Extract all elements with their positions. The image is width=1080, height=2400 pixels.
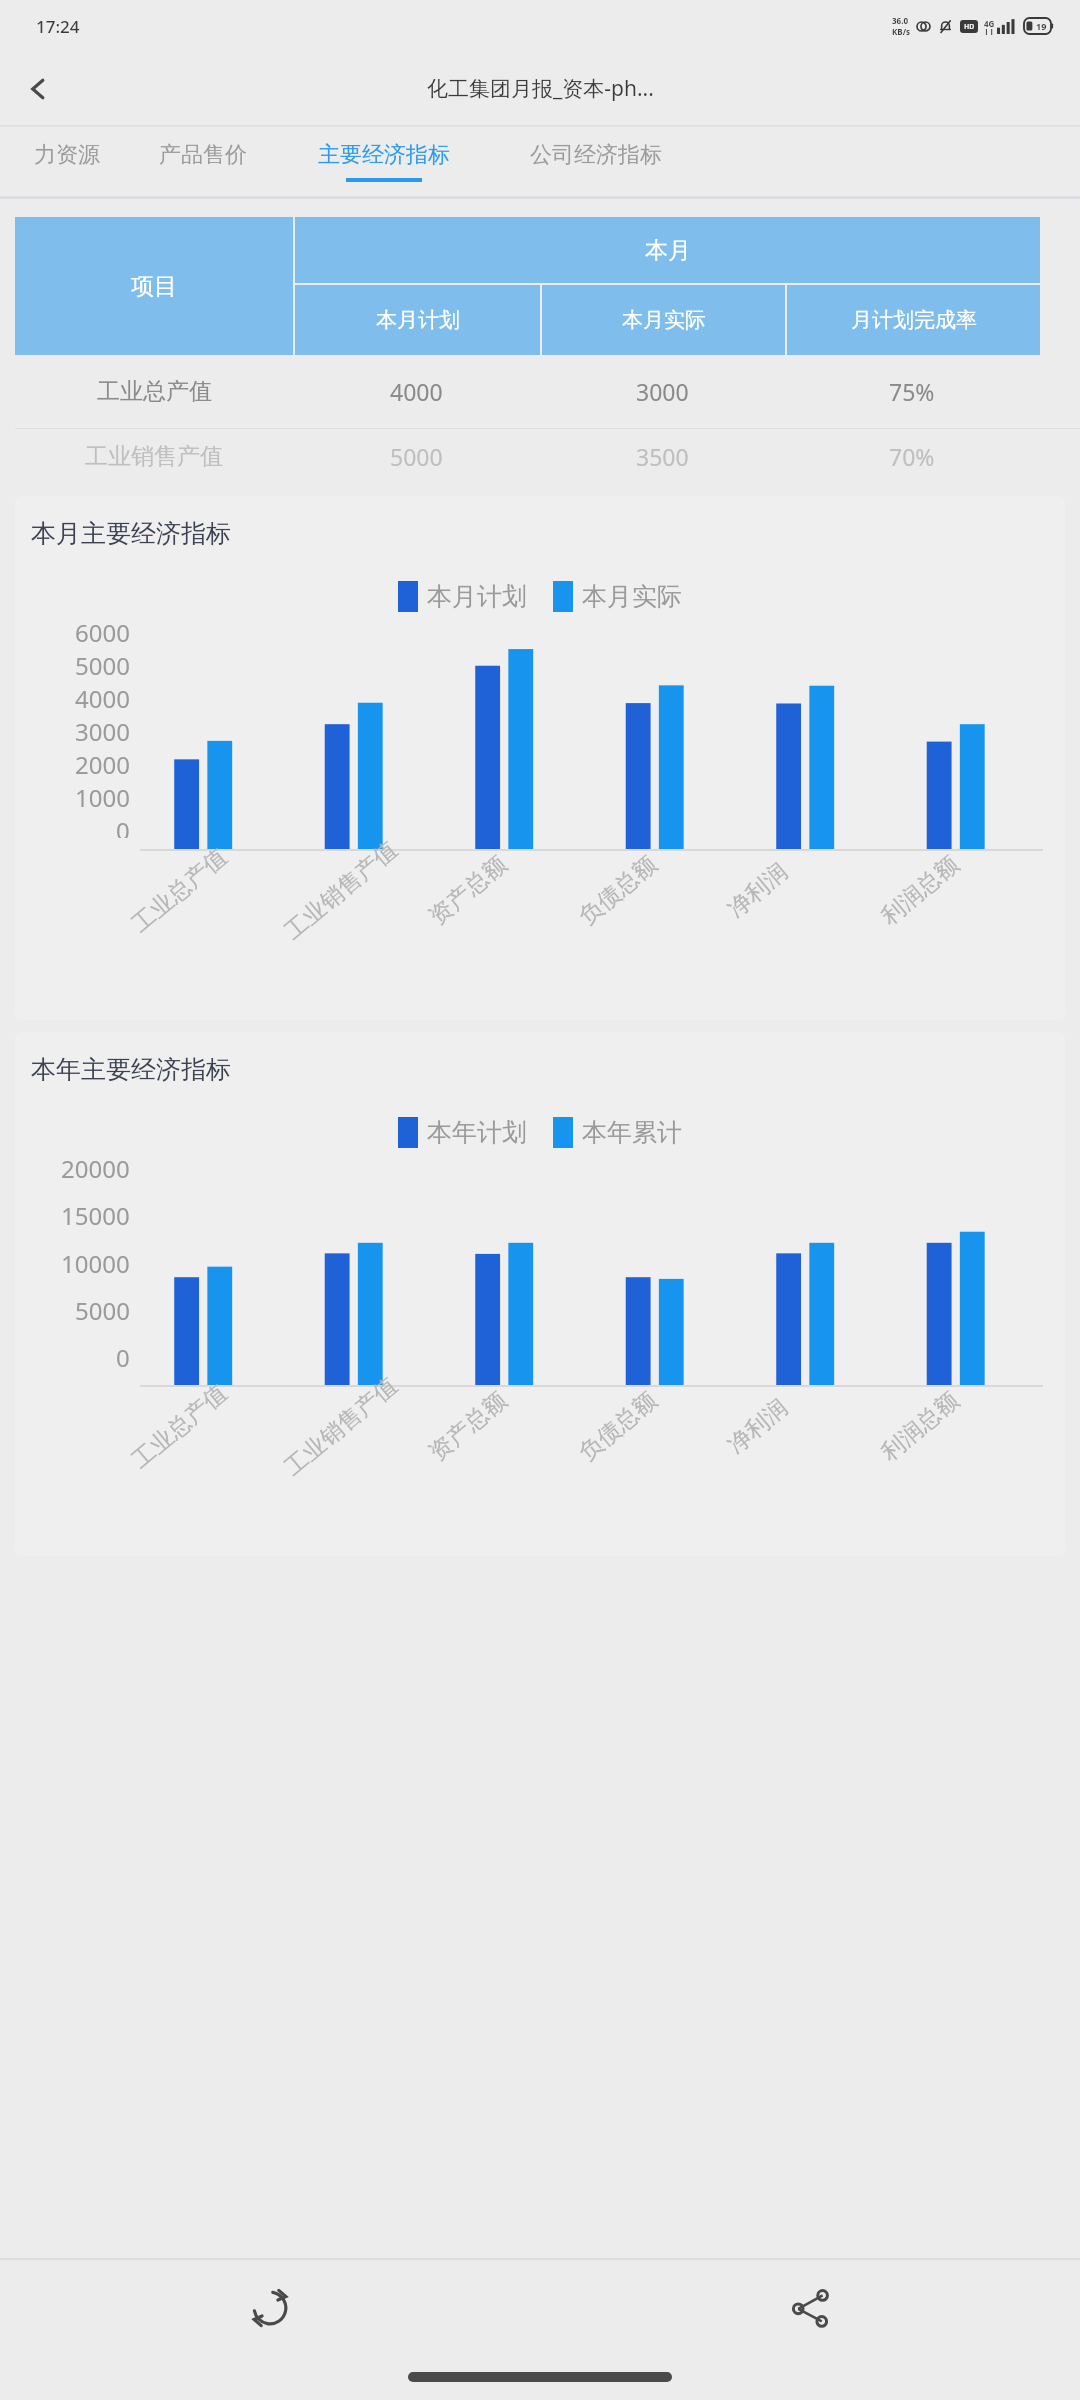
button[interactable]: Back [10,61,66,117]
button[interactable]: 公司经济指标 [490,127,702,196]
staticText: KB/s [892,26,910,37]
staticText: 月计划完成率 [851,307,977,333]
staticText: 5000 [75,1294,130,1327]
staticText: 19 [1036,20,1047,32]
staticText: HD [964,22,975,32]
staticText: 本月计划 [376,307,460,333]
staticText: 工业总产值 [97,377,212,406]
staticText: 化工集团月报_资本-ph... [427,74,654,103]
staticText: 17:24 [36,15,80,38]
staticText: 6000 [75,616,130,649]
button[interactable]: 本月主要经济指标 [15,496,1065,1020]
staticText: 本月主要经济指标 [31,518,231,549]
staticText: 项目 [131,272,177,301]
button[interactable]: 产品售价 [128,127,278,196]
staticText: 3500 [636,441,689,472]
staticText: 4G [984,18,995,29]
staticText: 0 [116,814,130,838]
staticText: 本月计划 [427,581,527,612]
staticText: 本月实际 [622,307,706,333]
staticText: 资产总额 [423,1386,512,1467]
staticText: 0 [116,1341,130,1374]
staticText: 本年计划 [427,1117,527,1148]
button[interactable]: Refresh [0,2260,540,2356]
staticText: 本年累计 [582,1117,682,1148]
staticText: 75% [889,376,935,407]
staticText: 净利润 [722,1393,793,1460]
staticText: 10000 [61,1247,130,1280]
staticText: 3000 [636,376,689,407]
staticText: 工业销售产值 [85,442,223,471]
button[interactable]: Share [540,2260,1080,2356]
staticText: 产品售价 [159,141,247,169]
staticText: 利润总额 [875,1386,964,1467]
staticText: 工业销售产值 [279,835,403,946]
staticText: 20000 [61,1152,130,1185]
staticText: 净利润 [722,857,793,924]
staticText: 5000 [75,649,130,682]
staticText: 本月 [645,236,691,265]
staticText: 负债总额 [573,850,662,931]
staticText: 本月实际 [582,581,682,612]
staticText: 4000 [75,682,130,715]
button[interactable]: 力资源 [6,127,128,196]
staticText: 5000 [390,441,443,472]
staticText: 15000 [61,1199,130,1232]
staticText: 力资源 [34,141,100,169]
staticText: 4000 [390,376,443,407]
staticText: 工业总产值 [126,1378,233,1474]
staticText: 工业销售产值 [279,1371,403,1482]
button[interactable]: 本年主要经济指标 [15,1032,1065,1556]
staticText: 主要经济指标 [318,141,450,169]
staticText: 资产总额 [423,850,512,931]
staticText: 70% [889,441,935,472]
staticText: 2000 [75,748,130,781]
staticText: 公司经济指标 [530,141,662,169]
staticText: 36.0 [892,15,908,26]
staticText: 工业总产值 [126,842,233,938]
staticText: 本年主要经济指标 [31,1054,231,1085]
staticText: 利润总额 [875,850,964,931]
button[interactable]: 主要经济指标 [278,127,490,196]
staticText: 负债总额 [573,1386,662,1467]
staticText: 3000 [75,715,130,748]
staticText: 1000 [75,781,130,814]
